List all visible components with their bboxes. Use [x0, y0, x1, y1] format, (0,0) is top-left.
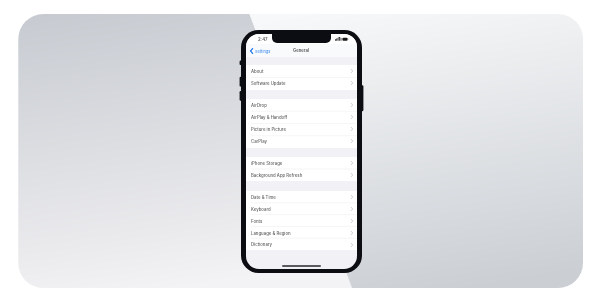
staticText: CarPlay [251, 139, 351, 144]
button[interactable]: AirDrop [246, 99, 357, 111]
staticText: Dictionary [251, 242, 351, 247]
staticText: AirDrop [251, 103, 351, 108]
button[interactable]: iPhone Storage [246, 157, 357, 169]
staticText: Picture in Picture [251, 127, 351, 132]
button[interactable]: About [246, 65, 357, 77]
button[interactable]: CarPlay [246, 135, 357, 147]
staticText: General [293, 48, 310, 53]
staticText: Software Update [251, 81, 351, 86]
button[interactable]: AirPlay & Handoff [246, 111, 357, 123]
button[interactable]: Background App Refresh [246, 169, 357, 181]
staticText: Background App Refresh [251, 173, 351, 178]
button[interactable]: Software Update [246, 77, 357, 89]
staticText: Settings [255, 49, 271, 54]
button[interactable]: Picture in Picture [246, 123, 357, 135]
button[interactable]: Settings [246, 46, 274, 56]
staticText: Date & Time [251, 195, 351, 200]
staticText: iPhone Storage [251, 161, 351, 166]
staticText: 2:47 [258, 37, 268, 42]
staticText: About [251, 69, 351, 74]
staticText: Fonts [251, 219, 351, 224]
button[interactable]: Dictionary [246, 239, 357, 250]
button[interactable]: Fonts [246, 215, 357, 227]
staticText: Keyboard [251, 207, 351, 212]
staticText: Language & Region [251, 231, 351, 236]
staticText: AirPlay & Handoff [251, 115, 351, 120]
button[interactable]: Date & Time [246, 191, 357, 203]
button[interactable]: Language & Region [246, 227, 357, 239]
button[interactable]: Keyboard [246, 203, 357, 215]
